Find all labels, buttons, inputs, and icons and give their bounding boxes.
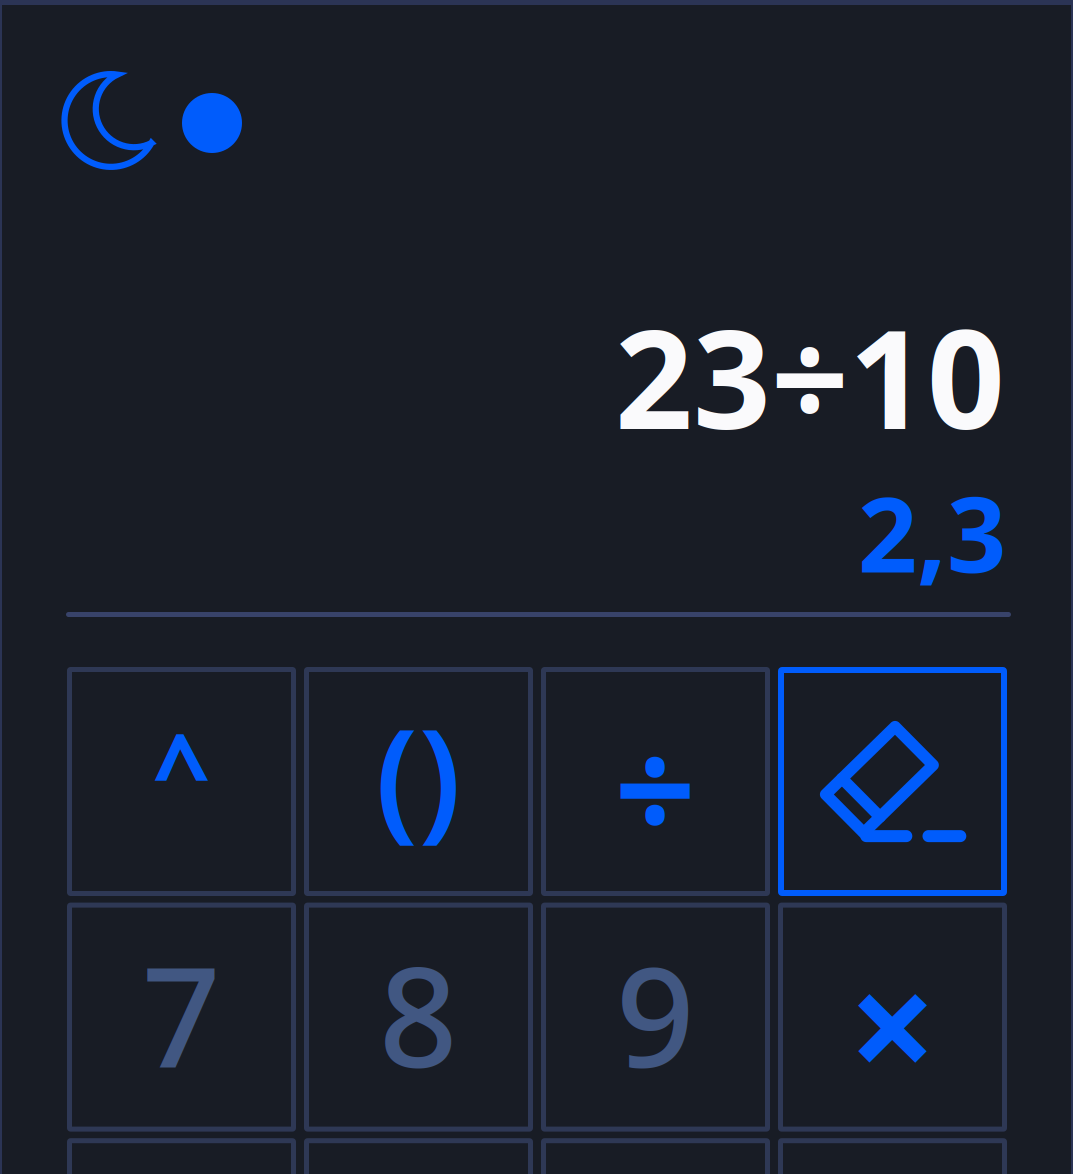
button[interactable]: () (304, 667, 533, 896)
button[interactable]: ÷ (541, 667, 770, 896)
staticText: 9 (616, 923, 695, 1105)
button[interactable]: ^ (67, 667, 296, 896)
staticText: 23÷10 (615, 286, 1005, 467)
button[interactable]: × (778, 903, 1007, 1132)
staticText: 2,3 (858, 463, 1006, 601)
staticText: () (375, 686, 461, 861)
button[interactable]: − (778, 1138, 1007, 1174)
button[interactable]: 7 (67, 903, 296, 1132)
button[interactable]: 5 (304, 1138, 533, 1174)
staticText: × (848, 920, 936, 1126)
button[interactable]: 6 (541, 1138, 770, 1174)
staticText: 7 (142, 923, 221, 1105)
button[interactable]: 8 (304, 903, 533, 1132)
button[interactable]: 4 (67, 1138, 296, 1174)
staticText: ÷ (614, 691, 696, 880)
button[interactable]: Accent colour (182, 93, 242, 153)
button[interactable]: 9 (541, 903, 770, 1132)
staticText: ^ (152, 700, 210, 835)
button[interactable]: Clear (778, 667, 1007, 896)
button[interactable]: Toggle dark mode (61, 71, 161, 171)
staticText: 8 (379, 923, 458, 1105)
